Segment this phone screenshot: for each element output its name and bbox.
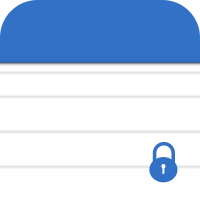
button[interactable]: Locked [149,142,177,182]
